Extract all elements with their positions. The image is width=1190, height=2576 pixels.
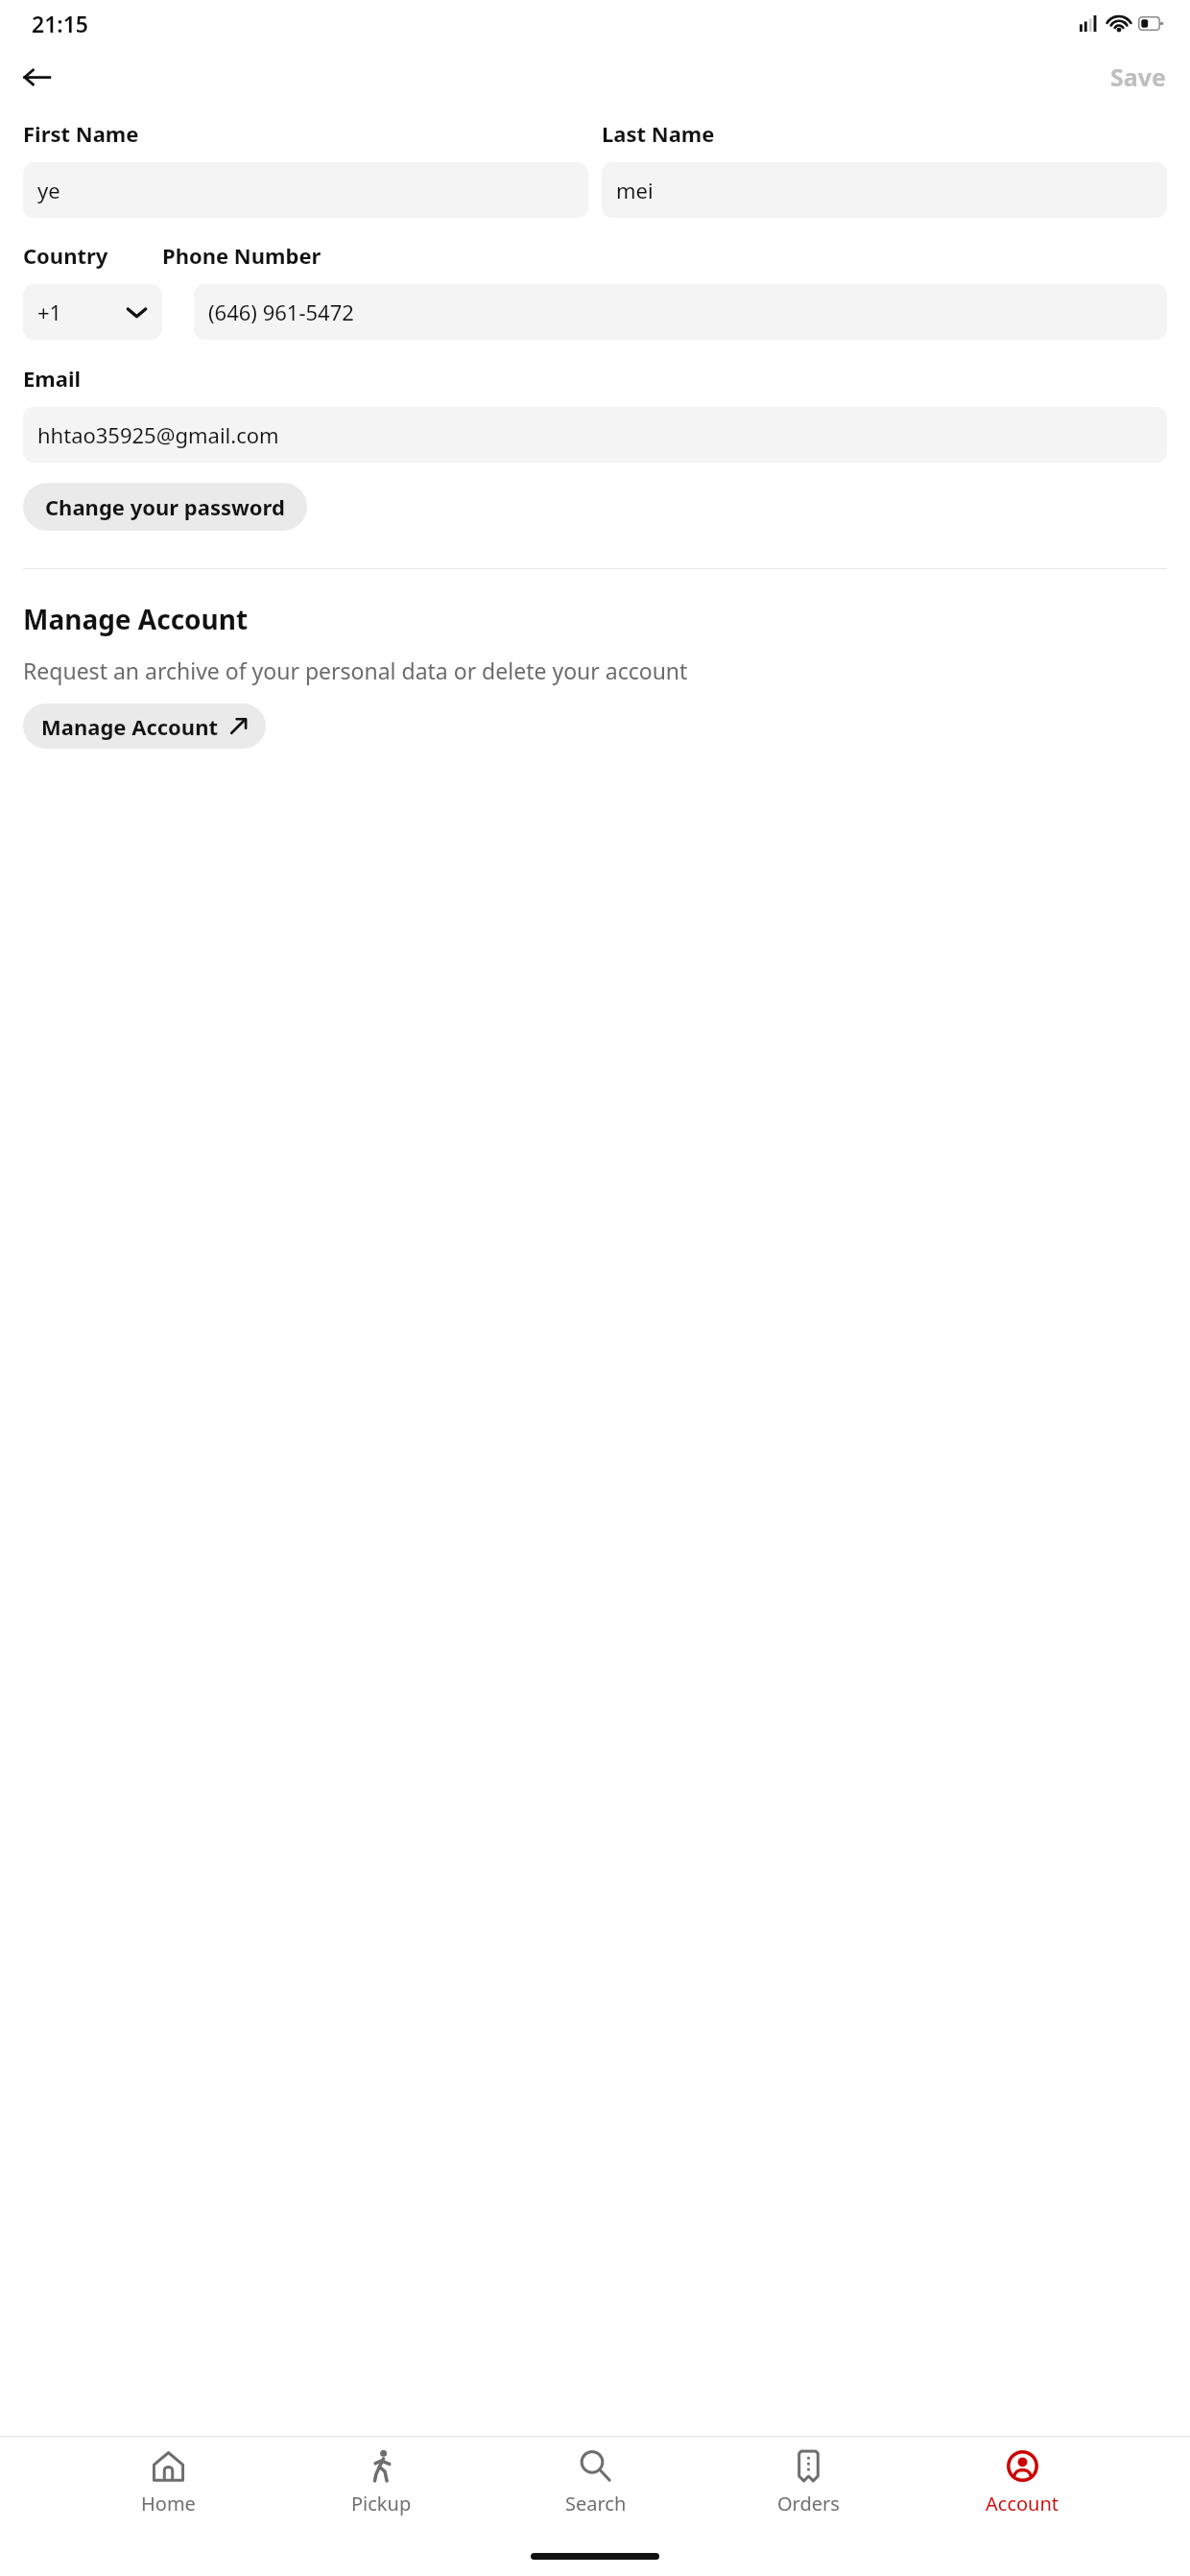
button[interactable]: ye — [23, 162, 588, 218]
button[interactable]: Home — [123, 2445, 214, 2521]
button[interactable]: Pickup — [336, 2445, 427, 2521]
button[interactable]: Orders — [763, 2445, 854, 2521]
staticText: mei — [616, 176, 654, 204]
staticText: Country — [23, 241, 162, 270]
staticText: ye — [37, 176, 60, 204]
staticText: First Name — [23, 119, 139, 148]
staticText: Account — [986, 2491, 1059, 2516]
staticText: Orders — [777, 2491, 840, 2516]
staticText: Pickup — [351, 2491, 412, 2516]
staticText: Manage Account — [41, 712, 218, 741]
button[interactable]: (646) 961-5472 — [194, 284, 1167, 340]
button[interactable]: Save — [1101, 55, 1176, 99]
staticText: Search — [565, 2491, 627, 2516]
staticText: hhtao35925@gmail.com — [37, 420, 279, 449]
staticText: Email — [23, 364, 82, 393]
staticText: Change your password — [45, 492, 285, 521]
staticText: +1 — [37, 298, 62, 326]
button[interactable]: Change your password — [23, 483, 307, 531]
staticText: (646) 961-5472 — [208, 298, 354, 326]
button[interactable]: Back — [11, 51, 63, 104]
staticText: 21:15 — [32, 9, 88, 38]
button[interactable]: Account — [977, 2445, 1068, 2521]
staticText: Save — [1110, 60, 1166, 93]
staticText: Manage Account — [23, 601, 249, 637]
button[interactable]: Manage Account — [23, 704, 266, 749]
button[interactable]: mei — [602, 162, 1167, 218]
staticText: Request an archive of your personal data… — [23, 656, 688, 685]
button[interactable]: hhtao35925@gmail.com — [23, 407, 1167, 463]
staticText: Home — [141, 2491, 196, 2516]
button[interactable]: +1 — [23, 284, 162, 340]
button[interactable]: Search — [550, 2445, 641, 2521]
staticText: Phone Number — [162, 241, 321, 270]
staticText: Last Name — [602, 119, 715, 148]
